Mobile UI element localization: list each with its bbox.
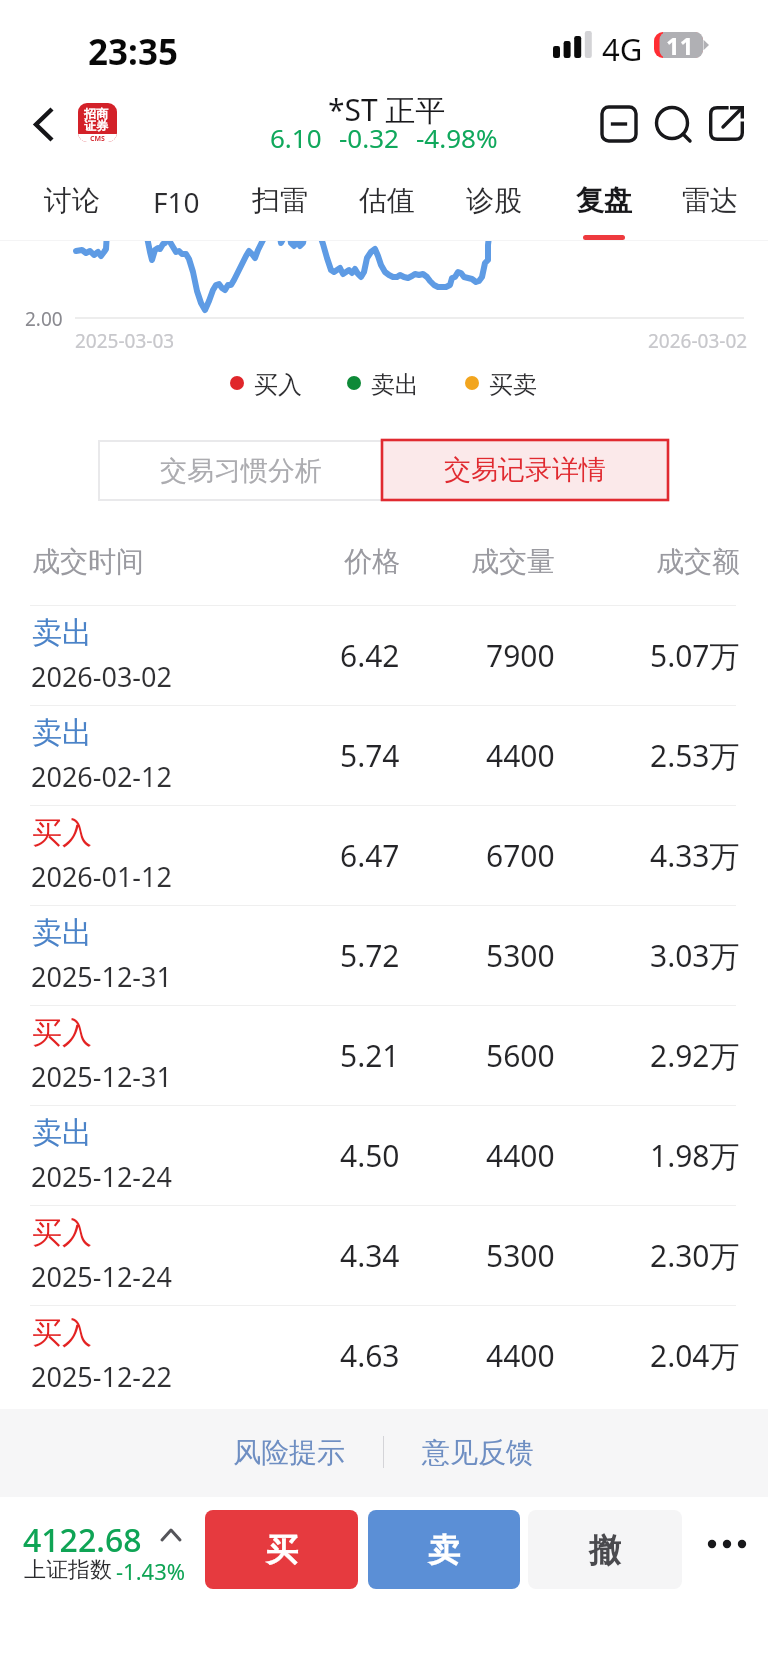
staticText: 5.74 — [340, 735, 400, 776]
staticText: 5.07万 — [650, 635, 740, 676]
staticText: 2025-12-24 — [31, 1158, 172, 1195]
staticText: 2025-12-24 — [31, 1258, 172, 1295]
button[interactable]: Search — [646, 97, 700, 151]
staticText: 意见反馈 — [422, 1435, 534, 1470]
button[interactable]: 讨论 — [18, 178, 126, 240]
button[interactable]: 4122.68 — [16, 1503, 196, 1589]
staticText: 4.50 — [340, 1135, 400, 1176]
staticText: 2.53万 — [650, 735, 740, 776]
staticText: 买入 — [32, 1314, 92, 1352]
staticText: 交易记录详情 — [444, 453, 606, 487]
staticText: 诊股 — [466, 183, 522, 218]
button[interactable]: 交易记录详情 — [382, 440, 668, 500]
staticText: 4.63 — [340, 1335, 400, 1376]
staticText: 2025-12-31 — [31, 958, 172, 995]
staticText: 成交量 — [471, 544, 555, 579]
button[interactable]: 诊股 — [440, 178, 548, 240]
button[interactable]: 估值 — [333, 178, 441, 240]
staticText: 卖出 — [371, 370, 419, 400]
button[interactable]: 卖出 — [0, 1106, 768, 1206]
staticText: 卖出 — [32, 914, 92, 952]
button[interactable]: 买入 — [0, 1306, 768, 1406]
button[interactable]: 意见反馈 — [394, 1423, 562, 1481]
staticText: 4.33万 — [650, 835, 740, 876]
staticText: 4.34 — [340, 1235, 400, 1276]
staticText: 撤 — [589, 1530, 621, 1570]
staticText: 6700 — [486, 835, 555, 876]
staticText: 卖出 — [32, 614, 92, 652]
button[interactable]: 买 — [205, 1510, 358, 1589]
staticText: 2025-12-22 — [31, 1358, 172, 1395]
button[interactable]: 卖出 — [0, 606, 768, 706]
button[interactable]: 复盘 — [550, 178, 658, 240]
staticText: 2026-02-12 — [31, 758, 172, 795]
button[interactable]: 卖出 — [0, 706, 768, 806]
staticText: CMS — [90, 134, 105, 142]
staticText: -4.98% — [416, 120, 498, 155]
staticText: -0.32 — [339, 120, 399, 155]
staticText: 6.10 — [270, 120, 322, 155]
staticText: 成交时间 — [32, 544, 144, 579]
staticText: 买卖 — [489, 370, 537, 400]
staticText: *ST 正平 — [328, 89, 446, 130]
staticText: 证券 — [84, 118, 108, 133]
staticText: 5600 — [486, 1035, 555, 1076]
staticText: 2.00 — [25, 306, 63, 332]
button[interactable]: Back — [14, 94, 74, 154]
staticText: 2.30万 — [650, 1235, 740, 1276]
staticText: 7900 — [486, 635, 555, 676]
staticText: 交易习惯分析 — [160, 454, 322, 488]
staticText: 买 — [266, 1530, 298, 1570]
staticText: 4122.68 — [23, 1518, 142, 1562]
staticText: 讨论 — [44, 183, 100, 218]
button[interactable]: 招商证券 — [78, 103, 117, 142]
staticText: 4400 — [486, 1135, 555, 1176]
button[interactable]: 卖出 — [0, 906, 768, 1006]
staticText: 成交额 — [656, 544, 740, 579]
button[interactable]: F10 — [122, 178, 230, 240]
button[interactable]: 买入 — [220, 362, 310, 404]
button[interactable]: 风险提示 — [206, 1423, 372, 1481]
staticText: 23:35 — [88, 28, 178, 76]
staticText: 1.98万 — [650, 1135, 740, 1176]
staticText: 估值 — [359, 183, 415, 218]
staticText: 6.47 — [340, 835, 400, 876]
staticText: F10 — [153, 183, 200, 221]
button[interactable]: 买卖 — [455, 362, 545, 404]
staticText: 招商 — [84, 106, 108, 121]
button[interactable]: 交易习惯分析 — [99, 441, 383, 500]
staticText: 2025-03-03 — [75, 328, 175, 351]
staticText: 5.72 — [340, 935, 400, 976]
button[interactable]: 卖出 — [337, 362, 427, 404]
staticText: 风险提示 — [233, 1435, 345, 1470]
button[interactable]: Collapse — [592, 97, 646, 151]
staticText: 4400 — [486, 735, 555, 776]
button[interactable]: 买入 — [0, 1006, 768, 1106]
button[interactable]: 卖 — [368, 1510, 520, 1589]
button[interactable]: 撤 — [528, 1510, 682, 1589]
button[interactable]: 扫雷 — [226, 178, 334, 240]
staticText: 卖 — [428, 1530, 460, 1570]
staticText: 买入 — [254, 370, 302, 400]
button[interactable]: 雷达 — [656, 178, 764, 240]
button[interactable]: Share — [699, 96, 753, 150]
staticText: 复盘 — [576, 183, 632, 218]
staticText: 上证指数 — [24, 1556, 112, 1584]
staticText: -1.43% — [116, 1556, 186, 1586]
staticText: 11 — [666, 29, 694, 55]
staticText: 扫雷 — [252, 183, 308, 218]
staticText: 4G — [602, 28, 643, 70]
staticText: 5300 — [486, 935, 555, 976]
staticText: 2025-12-31 — [31, 1058, 172, 1095]
staticText: 6.42 — [340, 635, 400, 676]
staticText: 2.92万 — [650, 1035, 740, 1076]
staticText: 5300 — [486, 1235, 555, 1276]
button[interactable]: More options — [690, 1510, 760, 1589]
button[interactable]: 买入 — [0, 1206, 768, 1306]
staticText: 卖出 — [32, 1114, 92, 1152]
staticText: 3.03万 — [650, 935, 740, 976]
staticText: 4400 — [486, 1335, 555, 1376]
staticText: 5.21 — [340, 1035, 400, 1076]
staticText: 买入 — [32, 1014, 92, 1052]
button[interactable]: 买入 — [0, 806, 768, 906]
